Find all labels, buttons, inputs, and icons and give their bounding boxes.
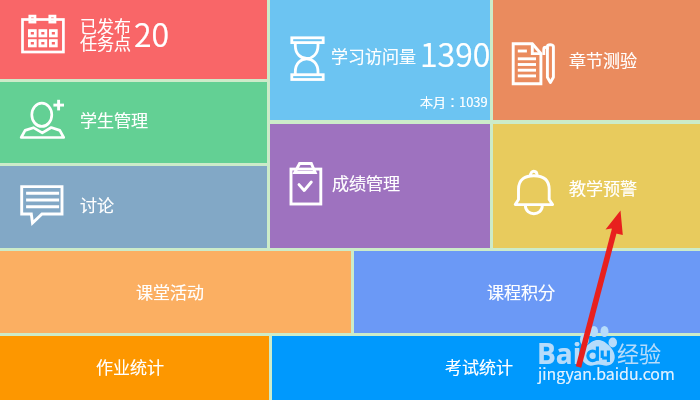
staticText: 经验 <box>617 336 662 368</box>
other: 成绩管理 <box>286 158 326 210</box>
button[interactable]: 已发布任务点 <box>0 0 267 79</box>
button[interactable]: 章节测验 <box>493 0 700 120</box>
staticText: 学习访问量 <box>331 43 416 68</box>
staticText: 任务点 <box>80 30 131 55</box>
button[interactable]: 讨论 <box>0 166 267 248</box>
staticText: 作业统计 <box>96 354 164 379</box>
button[interactable]: 学习访问量 <box>270 0 490 120</box>
other: 学生管理 <box>18 96 68 142</box>
other: 讨论 <box>18 180 68 228</box>
other: 教学预警 <box>510 165 558 220</box>
button[interactable] <box>272 336 700 400</box>
staticText: 学生管理 <box>80 107 148 132</box>
staticText: 教学预警 <box>569 175 637 200</box>
button[interactable]: 成绩管理 <box>270 124 490 248</box>
button[interactable] <box>0 251 351 333</box>
staticText: 考试统计 <box>445 354 513 379</box>
button[interactable] <box>0 336 269 400</box>
staticText: 本月：1039 <box>420 92 488 111</box>
staticText: 章节测验 <box>569 47 637 72</box>
other: 已发布任务点 <box>18 14 68 58</box>
staticText: 讨论 <box>80 192 114 217</box>
button[interactable]: 教学预警 <box>493 124 700 248</box>
button[interactable] <box>354 251 700 333</box>
staticText: 已发布 <box>80 13 131 38</box>
staticText: 课程积分 <box>487 279 555 304</box>
staticText: 成绩管理 <box>332 170 400 195</box>
other: 学习访问量 <box>288 34 327 82</box>
staticText: 1390 <box>420 30 491 76</box>
staticText: 课堂活动 <box>136 279 204 304</box>
staticText: 20 <box>134 10 170 56</box>
staticText: Bai <box>537 334 582 372</box>
staticText: jingyan.baidu.com <box>538 361 675 384</box>
other: 章节测验 <box>510 38 560 90</box>
button[interactable]: 学生管理 <box>0 82 267 163</box>
